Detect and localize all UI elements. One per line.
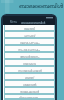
button[interactable]: രാജാക്കന്മാർ: [4, 88, 55, 95]
button[interactable]: ശമൂവേൽ: [4, 81, 55, 88]
button[interactable]: ഉല്പത്തി: [4, 25, 55, 32]
staticText: ശമൂവേൽ: [23, 83, 37, 86]
staticText: രൂത്ത്: [25, 76, 35, 79]
staticText: ബാലബൈബിൾ: [21, 21, 46, 24]
button[interactable]: പുറപ്പാട്: [4, 32, 55, 39]
staticText: ന്യായാധിപന്മാർ: [18, 69, 42, 72]
button[interactable]: രൂത്ത്: [4, 74, 55, 81]
staticText: ബാലബൈബിൾ: [19, 3, 64, 9]
staticText: ദിനവൃത്താന്തം: [19, 96, 40, 99]
staticText: ആവർത്തനം: [20, 55, 40, 58]
button[interactable]: സംഖ്യാപുസ്തകം: [4, 46, 55, 53]
staticText: ലേവ്യപുസ്തകം: [20, 41, 40, 44]
staticText: ഉല്പത്തി: [24, 27, 35, 30]
button[interactable]: ലേവ്യപുസ്തകം: [4, 39, 55, 46]
button[interactable]: ആവർത്തനം: [4, 53, 55, 60]
staticText: സംഖ്യാപുസ്തകം: [18, 48, 41, 51]
staticText: പുറപ്പാട്: [24, 34, 36, 37]
staticText: രാജാക്കന്മാർ: [20, 90, 40, 93]
staticText: യോശുവ: [23, 62, 36, 65]
button[interactable]: യോശുവ: [4, 60, 55, 67]
staticText: Menu: [10, 20, 18, 24]
button[interactable]: ദിനവൃത്താന്തം: [4, 95, 55, 100]
button[interactable]: ന്യായാധിപന്മാർ: [4, 67, 55, 74]
